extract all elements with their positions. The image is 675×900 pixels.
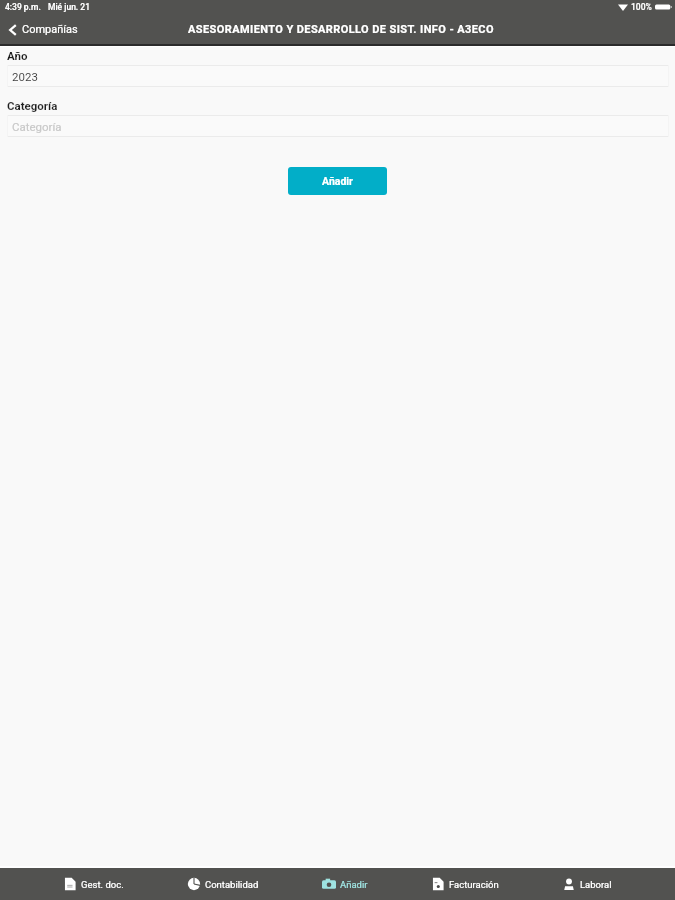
staticText: Contabilidad bbox=[205, 879, 259, 890]
staticText: Facturación bbox=[449, 879, 499, 890]
button[interactable]: 2023 bbox=[7, 65, 669, 87]
staticText: 2023 bbox=[12, 70, 38, 83]
other: Battery full bbox=[655, 3, 672, 11]
staticText: Añadir bbox=[340, 879, 368, 890]
button[interactable]: Contabilidad bbox=[187, 877, 259, 891]
staticText: Compañías bbox=[22, 23, 78, 36]
staticText: Categoría bbox=[12, 120, 62, 133]
staticText: Categoría bbox=[7, 99, 58, 112]
button[interactable]: Back bbox=[9, 23, 78, 36]
other: Back bbox=[9, 24, 17, 36]
other: Wi-Fi connected bbox=[618, 3, 628, 11]
staticText: 4:39 p.m. bbox=[5, 2, 41, 12]
staticText: Laboral bbox=[580, 879, 612, 890]
staticText: ASESORAMIENTO Y DESARROLLO DE SIST. INFO… bbox=[188, 23, 494, 36]
button[interactable]: Categoría bbox=[7, 115, 669, 137]
button[interactable]: Añadir bbox=[322, 877, 368, 891]
staticText: Mié jun. 21 bbox=[48, 2, 90, 12]
button[interactable]: Gest. doc. bbox=[63, 877, 124, 891]
button[interactable]: Añadir bbox=[288, 167, 387, 195]
staticText: Gest. doc. bbox=[81, 879, 124, 890]
staticText: Añadir bbox=[322, 175, 353, 187]
button[interactable]: Laboral bbox=[562, 877, 612, 891]
button[interactable]: Facturación bbox=[431, 877, 499, 891]
staticText: 100% bbox=[631, 2, 652, 12]
staticText: Año bbox=[7, 49, 28, 62]
